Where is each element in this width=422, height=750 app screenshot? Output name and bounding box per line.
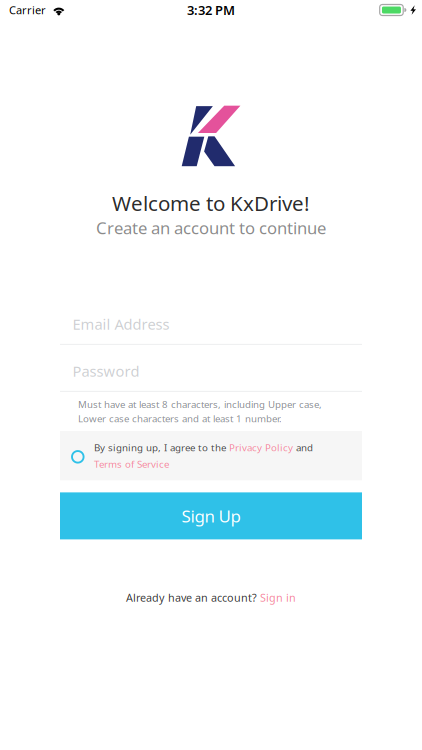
staticText: Lower case characters and at least 1 num… — [78, 412, 282, 425]
staticText: 3:32 PM — [187, 1, 235, 19]
staticText: Welcome to KxDrive! — [112, 189, 310, 217]
staticText: Must have at least 8 characters, includi… — [78, 398, 322, 411]
staticText: Create an account to continue — [96, 217, 326, 239]
staticText: Terms of Service — [94, 457, 169, 470]
staticText: Already have an account? — [126, 590, 260, 605]
button[interactable]: Sign Up — [60, 492, 362, 539]
staticText: Email Address — [72, 314, 169, 334]
staticText: Password — [72, 361, 139, 381]
staticText: Sign Up — [181, 505, 240, 527]
button[interactable]: Already have an account? — [126, 590, 296, 605]
staticText: Sign in — [260, 590, 296, 605]
staticText: and — [293, 441, 313, 454]
staticText: Privacy Policy — [229, 441, 293, 454]
staticText: By signing up, I agree to the — [94, 441, 229, 454]
staticText: Carrier — [9, 3, 46, 17]
button[interactable]: By signing up, I agree to the — [60, 431, 362, 480]
